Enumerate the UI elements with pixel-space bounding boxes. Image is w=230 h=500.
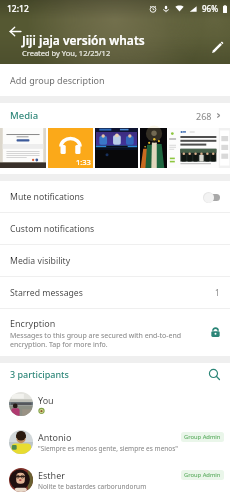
staticText: 3 participants bbox=[10, 368, 69, 380]
button[interactable]: Add group description bbox=[0, 64, 230, 96]
staticText: Add group description bbox=[10, 74, 105, 86]
button[interactable]: Media bbox=[0, 103, 230, 174]
staticText: Messages to this group are secured with … bbox=[10, 331, 204, 349]
staticText: 268 bbox=[196, 110, 212, 122]
button[interactable]: Search bbox=[208, 368, 221, 381]
staticText: Jiji jaja versión whats bbox=[22, 32, 145, 48]
staticText: Antonio bbox=[38, 431, 72, 443]
staticText: 96% bbox=[202, 3, 218, 14]
button[interactable]: Starred messages bbox=[0, 277, 230, 308]
staticText: Created by You, 12/25/12 bbox=[22, 48, 111, 58]
button[interactable]: Media visibility bbox=[0, 245, 230, 276]
staticText: Media bbox=[10, 109, 39, 122]
staticText: Media visibility bbox=[10, 255, 71, 267]
staticText: Mute notifications bbox=[10, 191, 84, 203]
staticText: Encryption bbox=[10, 317, 56, 329]
button[interactable]: Edit bbox=[205, 35, 229, 59]
staticText: 1 bbox=[215, 287, 220, 298]
staticText: Group Admin bbox=[184, 471, 221, 479]
staticText: 12:12 bbox=[7, 3, 29, 15]
button[interactable]: Antonio bbox=[0, 423, 230, 461]
button[interactable]: Back bbox=[3, 19, 28, 44]
staticText: Custom notifications bbox=[10, 223, 95, 235]
staticText: You bbox=[38, 394, 54, 406]
button[interactable]: Encryption bbox=[0, 309, 230, 356]
staticText: "Siempre es menos gente, siempre es meno… bbox=[38, 444, 179, 453]
button[interactable]: You bbox=[0, 385, 230, 423]
staticText: Starred messages bbox=[10, 287, 83, 299]
staticText: 1:33 bbox=[76, 157, 91, 167]
staticText: Esther bbox=[38, 469, 65, 481]
staticText: Group Admin bbox=[184, 433, 221, 441]
button[interactable]: Custom notifications bbox=[0, 213, 230, 244]
button[interactable]: Mute notifications bbox=[0, 181, 230, 212]
staticText: Nolite te bastardes carborundorum bbox=[38, 482, 147, 491]
button[interactable]: Esther bbox=[0, 461, 230, 499]
